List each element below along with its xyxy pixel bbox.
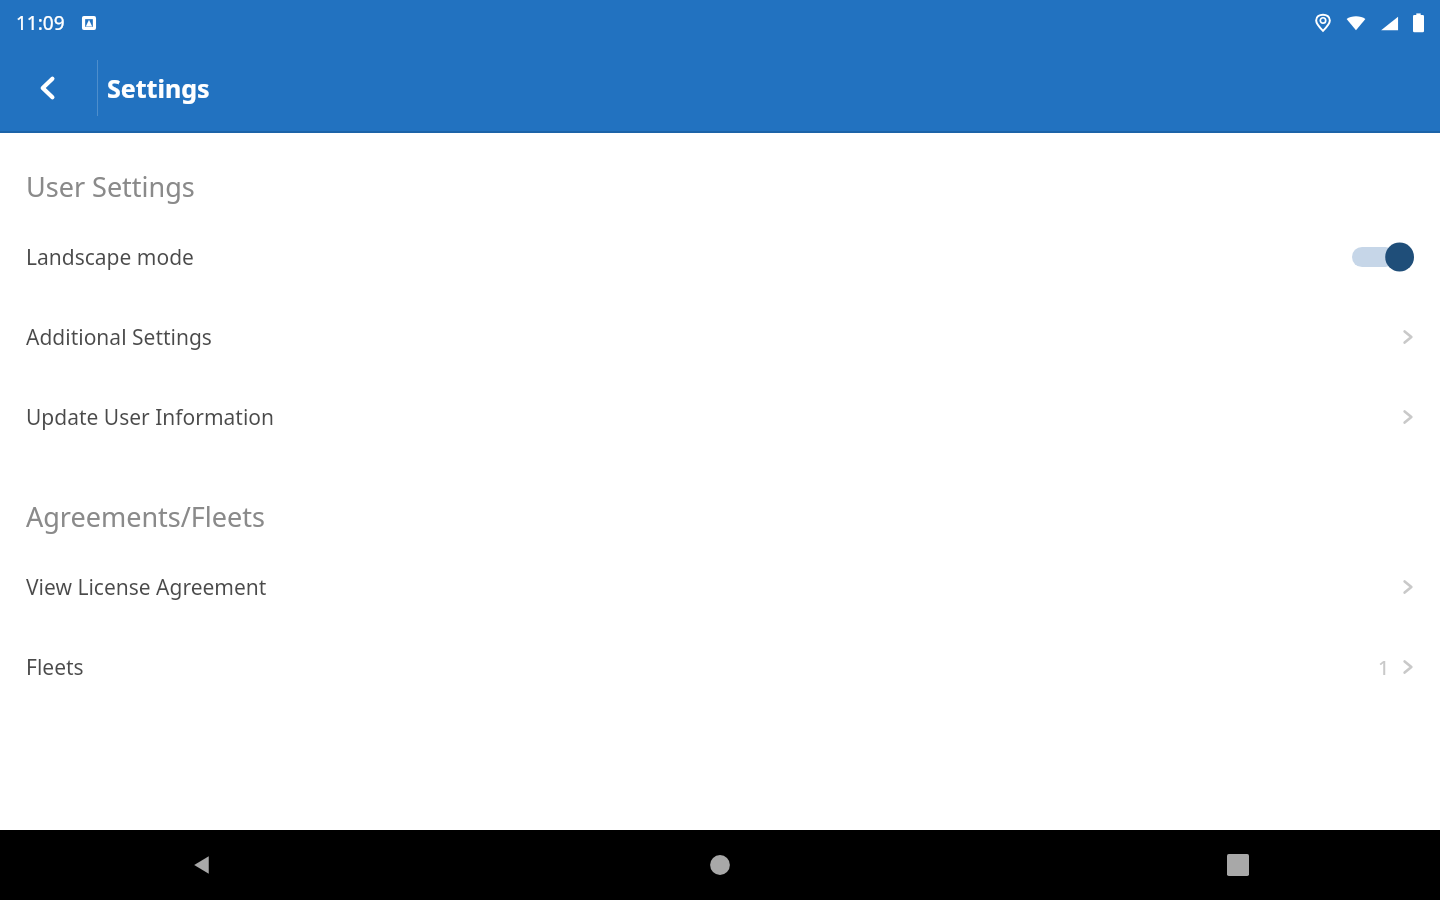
button[interactable]: Fleets	[0, 627, 1440, 707]
staticText: 1	[1378, 654, 1390, 681]
staticText: 11:09	[16, 10, 65, 36]
staticText: Additional Settings	[26, 323, 1402, 352]
button[interactable]: Landscape mode toggle	[1352, 239, 1414, 275]
button[interactable]: Landscape mode	[0, 217, 1440, 297]
button[interactable]: Back	[18, 58, 78, 118]
button[interactable]: View License Agreement	[0, 547, 1440, 627]
button[interactable]: Back	[170, 833, 234, 897]
button[interactable]: Recent apps	[1206, 833, 1270, 897]
button[interactable]: Home	[688, 833, 752, 897]
staticText: Update User Information	[26, 403, 1402, 432]
staticText: Agreements/Fleets	[26, 498, 265, 535]
button[interactable]: Additional Settings	[0, 297, 1440, 377]
staticText: Landscape mode	[26, 243, 1352, 272]
staticText: Settings	[107, 71, 210, 105]
staticText: User Settings	[26, 168, 195, 205]
button[interactable]: Update User Information	[0, 377, 1440, 457]
staticText: View License Agreement	[26, 573, 1402, 602]
staticText: Fleets	[26, 653, 1378, 682]
